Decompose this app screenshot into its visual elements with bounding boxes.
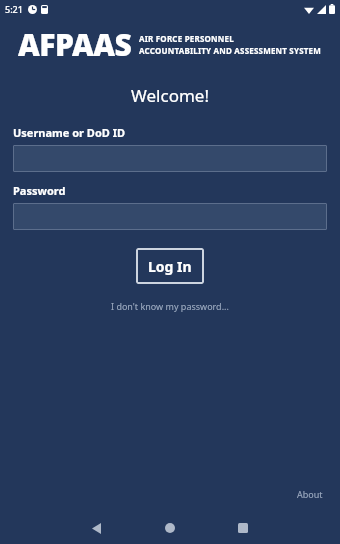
staticText: About bbox=[297, 488, 323, 500]
button[interactable]: About bbox=[293, 486, 327, 502]
button[interactable]: Recent apps bbox=[229, 514, 257, 542]
button[interactable]: Log In bbox=[136, 248, 204, 284]
staticText: Welcome! bbox=[0, 84, 340, 107]
staticText: I don't know my password... bbox=[111, 300, 229, 312]
staticText: Password bbox=[13, 183, 66, 198]
button[interactable] bbox=[13, 203, 327, 230]
staticText: AIR FORCE PERSONNEL bbox=[139, 33, 234, 44]
staticText: ACCOUNTABILITY AND ASSESSMENT SYSTEM bbox=[139, 45, 322, 56]
button[interactable]: Home bbox=[156, 514, 184, 542]
staticText: AFPAAS bbox=[18, 24, 132, 65]
staticText: 5:21 bbox=[5, 3, 23, 15]
staticText: Username or DoD ID bbox=[13, 125, 126, 140]
button[interactable] bbox=[13, 145, 327, 172]
staticText: Log In bbox=[148, 257, 192, 276]
button[interactable]: I don't know my password... bbox=[105, 298, 235, 314]
button[interactable]: Back bbox=[82, 514, 110, 542]
